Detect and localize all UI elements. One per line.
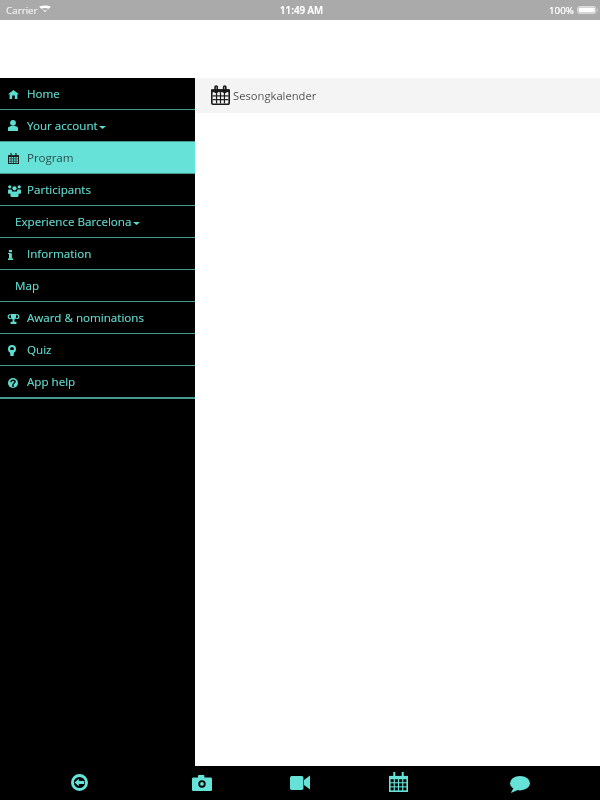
button[interactable]: Video [274, 766, 326, 800]
button[interactable]: Chat [494, 766, 546, 800]
button[interactable]: Map [0, 270, 195, 301]
staticText: Program [27, 150, 74, 166]
staticText: Quiz [27, 342, 52, 358]
button[interactable]: Participants [0, 174, 195, 205]
staticText: Experience Barcelona [15, 214, 132, 230]
button[interactable]: Award & nominations [0, 302, 195, 333]
staticText: Home [27, 86, 60, 102]
button[interactable]: Camera [176, 766, 228, 800]
staticText: 11:49 AM [280, 4, 324, 17]
button[interactable]: Experience Barcelona [0, 206, 195, 237]
button[interactable]: Your account [0, 110, 195, 141]
staticText: App help [27, 374, 76, 390]
button[interactable]: Back [53, 766, 105, 800]
button[interactable]: Home [0, 78, 195, 109]
staticText: Sesongkalender [233, 88, 317, 103]
staticText: Participants [27, 182, 91, 198]
staticText: Information [27, 246, 92, 262]
button[interactable]: Calendar [372, 766, 424, 800]
button[interactable]: Sesongkalender [195, 78, 600, 113]
staticText: Award & nominations [27, 310, 144, 326]
button[interactable]: Program [0, 142, 195, 173]
staticText: Map [15, 278, 40, 294]
button[interactable]: App help [0, 366, 195, 397]
button[interactable]: Information [0, 238, 195, 269]
button[interactable]: Quiz [0, 334, 195, 365]
staticText: 100% [549, 4, 574, 17]
staticText: Your account [27, 118, 98, 134]
staticText: Carrier [6, 4, 38, 17]
